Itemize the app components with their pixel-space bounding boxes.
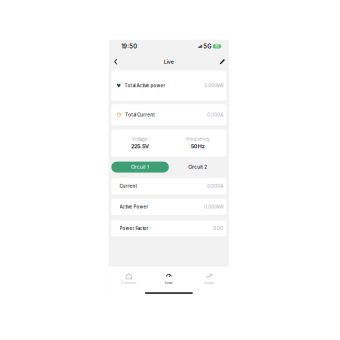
staticText: Overview (121, 281, 137, 285)
staticText: Circuit 2 (188, 164, 207, 170)
staticText: 19:50 (121, 43, 137, 50)
staticText: Total Current (125, 112, 154, 117)
staticText: Active Power (119, 204, 148, 209)
button[interactable]: Overview (109, 271, 149, 287)
staticText: 5G (203, 43, 211, 50)
button[interactable]: Usage (189, 271, 229, 287)
button[interactable]: Active Power (111, 199, 226, 215)
staticText: Live (165, 281, 172, 285)
staticText: Power Factor (119, 226, 148, 231)
button[interactable]: Edit (219, 57, 226, 66)
staticText: 85 (215, 44, 219, 48)
button[interactable]: Total Current (111, 104, 226, 125)
staticText: 225.5V (131, 143, 149, 150)
staticText: Usage (204, 281, 214, 285)
staticText: 0.000kW (204, 83, 223, 88)
staticText: Circuit 1 (131, 164, 149, 170)
staticText: 50Hz (191, 143, 205, 150)
button[interactable]: Current (111, 178, 226, 194)
staticText: 0.000kW (204, 204, 223, 210)
staticText: 0.000A (207, 183, 223, 189)
staticText: Frequency (186, 136, 209, 142)
button[interactable]: Live (149, 271, 189, 287)
button[interactable]: Power Factor (111, 220, 226, 236)
staticText: 0.000A (207, 112, 223, 118)
staticText: Total Active power (125, 83, 166, 88)
staticText: Voltage (132, 136, 148, 142)
button[interactable]: Back (112, 57, 119, 66)
button[interactable]: Circuit 2 (169, 162, 226, 173)
button[interactable]: Circuit 1 (111, 162, 169, 173)
staticText: Live (164, 58, 174, 65)
staticText: Current (119, 183, 136, 189)
button[interactable]: Total Active power (111, 70, 226, 101)
staticText: 0.00 (213, 226, 223, 231)
